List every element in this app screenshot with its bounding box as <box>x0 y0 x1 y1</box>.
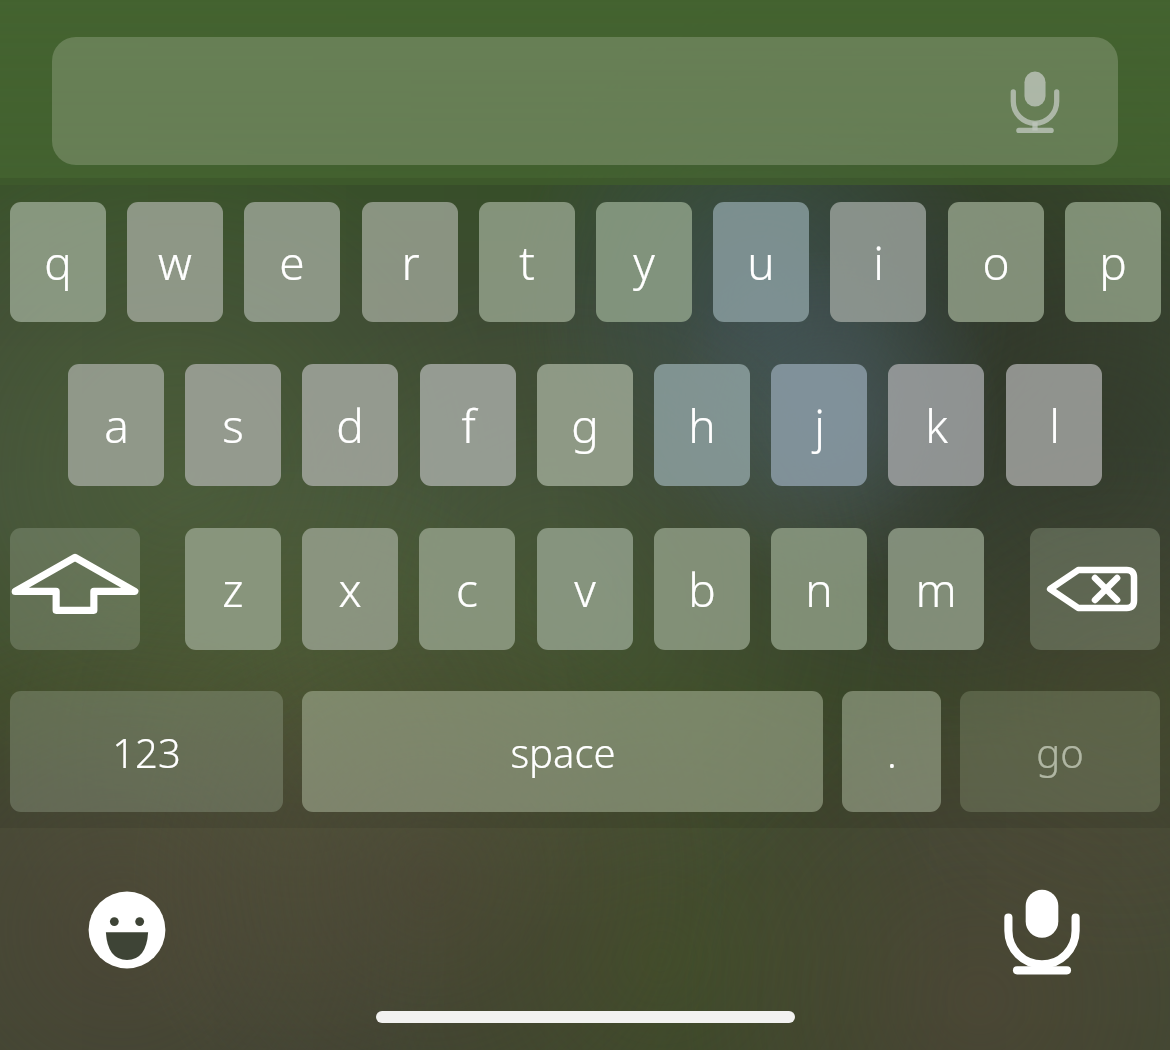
button[interactable]: g <box>537 364 633 486</box>
button[interactable]: t <box>479 202 575 322</box>
staticText: j <box>814 394 825 457</box>
button[interactable]: p <box>1065 202 1161 322</box>
staticText: t <box>519 231 535 294</box>
button[interactable]: Dictate <box>52 37 1118 165</box>
button[interactable]: d <box>302 364 398 486</box>
staticText: p <box>1099 231 1127 294</box>
staticText: a <box>104 394 129 457</box>
button[interactable]: Dictation <box>994 882 1090 978</box>
button[interactable]: i <box>830 202 926 322</box>
button[interactable]: y <box>596 202 692 322</box>
button[interactable]: Shift <box>10 528 140 650</box>
button[interactable]: 123 <box>10 691 283 812</box>
staticText: d <box>336 394 364 457</box>
staticText: i <box>873 231 884 294</box>
button[interactable]: l <box>1006 364 1102 486</box>
staticText: x <box>338 558 362 621</box>
staticText: z <box>222 558 244 621</box>
button[interactable]: u <box>713 202 809 322</box>
staticText: y <box>633 231 655 294</box>
staticText: go <box>1036 725 1084 779</box>
button[interactable]: s <box>185 364 281 486</box>
button[interactable]: n <box>771 528 867 650</box>
staticText: l <box>1049 394 1060 457</box>
staticText: s <box>222 394 244 457</box>
staticText: e <box>279 231 305 294</box>
button[interactable]: go <box>960 691 1160 812</box>
button[interactable]: Dictate <box>1004 66 1066 136</box>
staticText: b <box>688 558 716 621</box>
staticText: q <box>44 231 72 294</box>
staticText: f <box>461 394 476 457</box>
button[interactable]: v <box>537 528 633 650</box>
staticText: h <box>688 394 716 457</box>
button[interactable]: Backspace <box>1030 528 1160 650</box>
staticText: space <box>510 725 616 779</box>
button[interactable]: b <box>654 528 750 650</box>
staticText: r <box>401 231 420 294</box>
button[interactable]: j <box>771 364 867 486</box>
button[interactable]: r <box>362 202 458 322</box>
button[interactable]: e <box>244 202 340 322</box>
staticText: c <box>456 558 478 621</box>
button[interactable]: z <box>185 528 281 650</box>
button[interactable]: w <box>127 202 223 322</box>
button[interactable]: m <box>888 528 984 650</box>
staticText: w <box>158 231 192 294</box>
button[interactable]: x <box>302 528 398 650</box>
staticText: u <box>747 231 775 294</box>
staticText: k <box>925 394 948 457</box>
button[interactable]: h <box>654 364 750 486</box>
button[interactable]: c <box>419 528 515 650</box>
staticText: 123 <box>112 725 181 779</box>
staticText: g <box>571 394 599 457</box>
staticText: o <box>982 231 1010 294</box>
staticText: n <box>805 558 833 621</box>
button[interactable]: space <box>302 691 823 812</box>
button[interactable]: k <box>888 364 984 486</box>
button[interactable]: f <box>420 364 516 486</box>
button[interactable]: q <box>10 202 106 322</box>
staticText: . <box>887 725 897 779</box>
button[interactable]: Emoji <box>79 882 175 978</box>
staticText: m <box>915 558 957 621</box>
button[interactable]: o <box>948 202 1044 322</box>
button[interactable]: . <box>842 691 941 812</box>
staticText: v <box>574 558 596 621</box>
button[interactable]: a <box>68 364 164 486</box>
